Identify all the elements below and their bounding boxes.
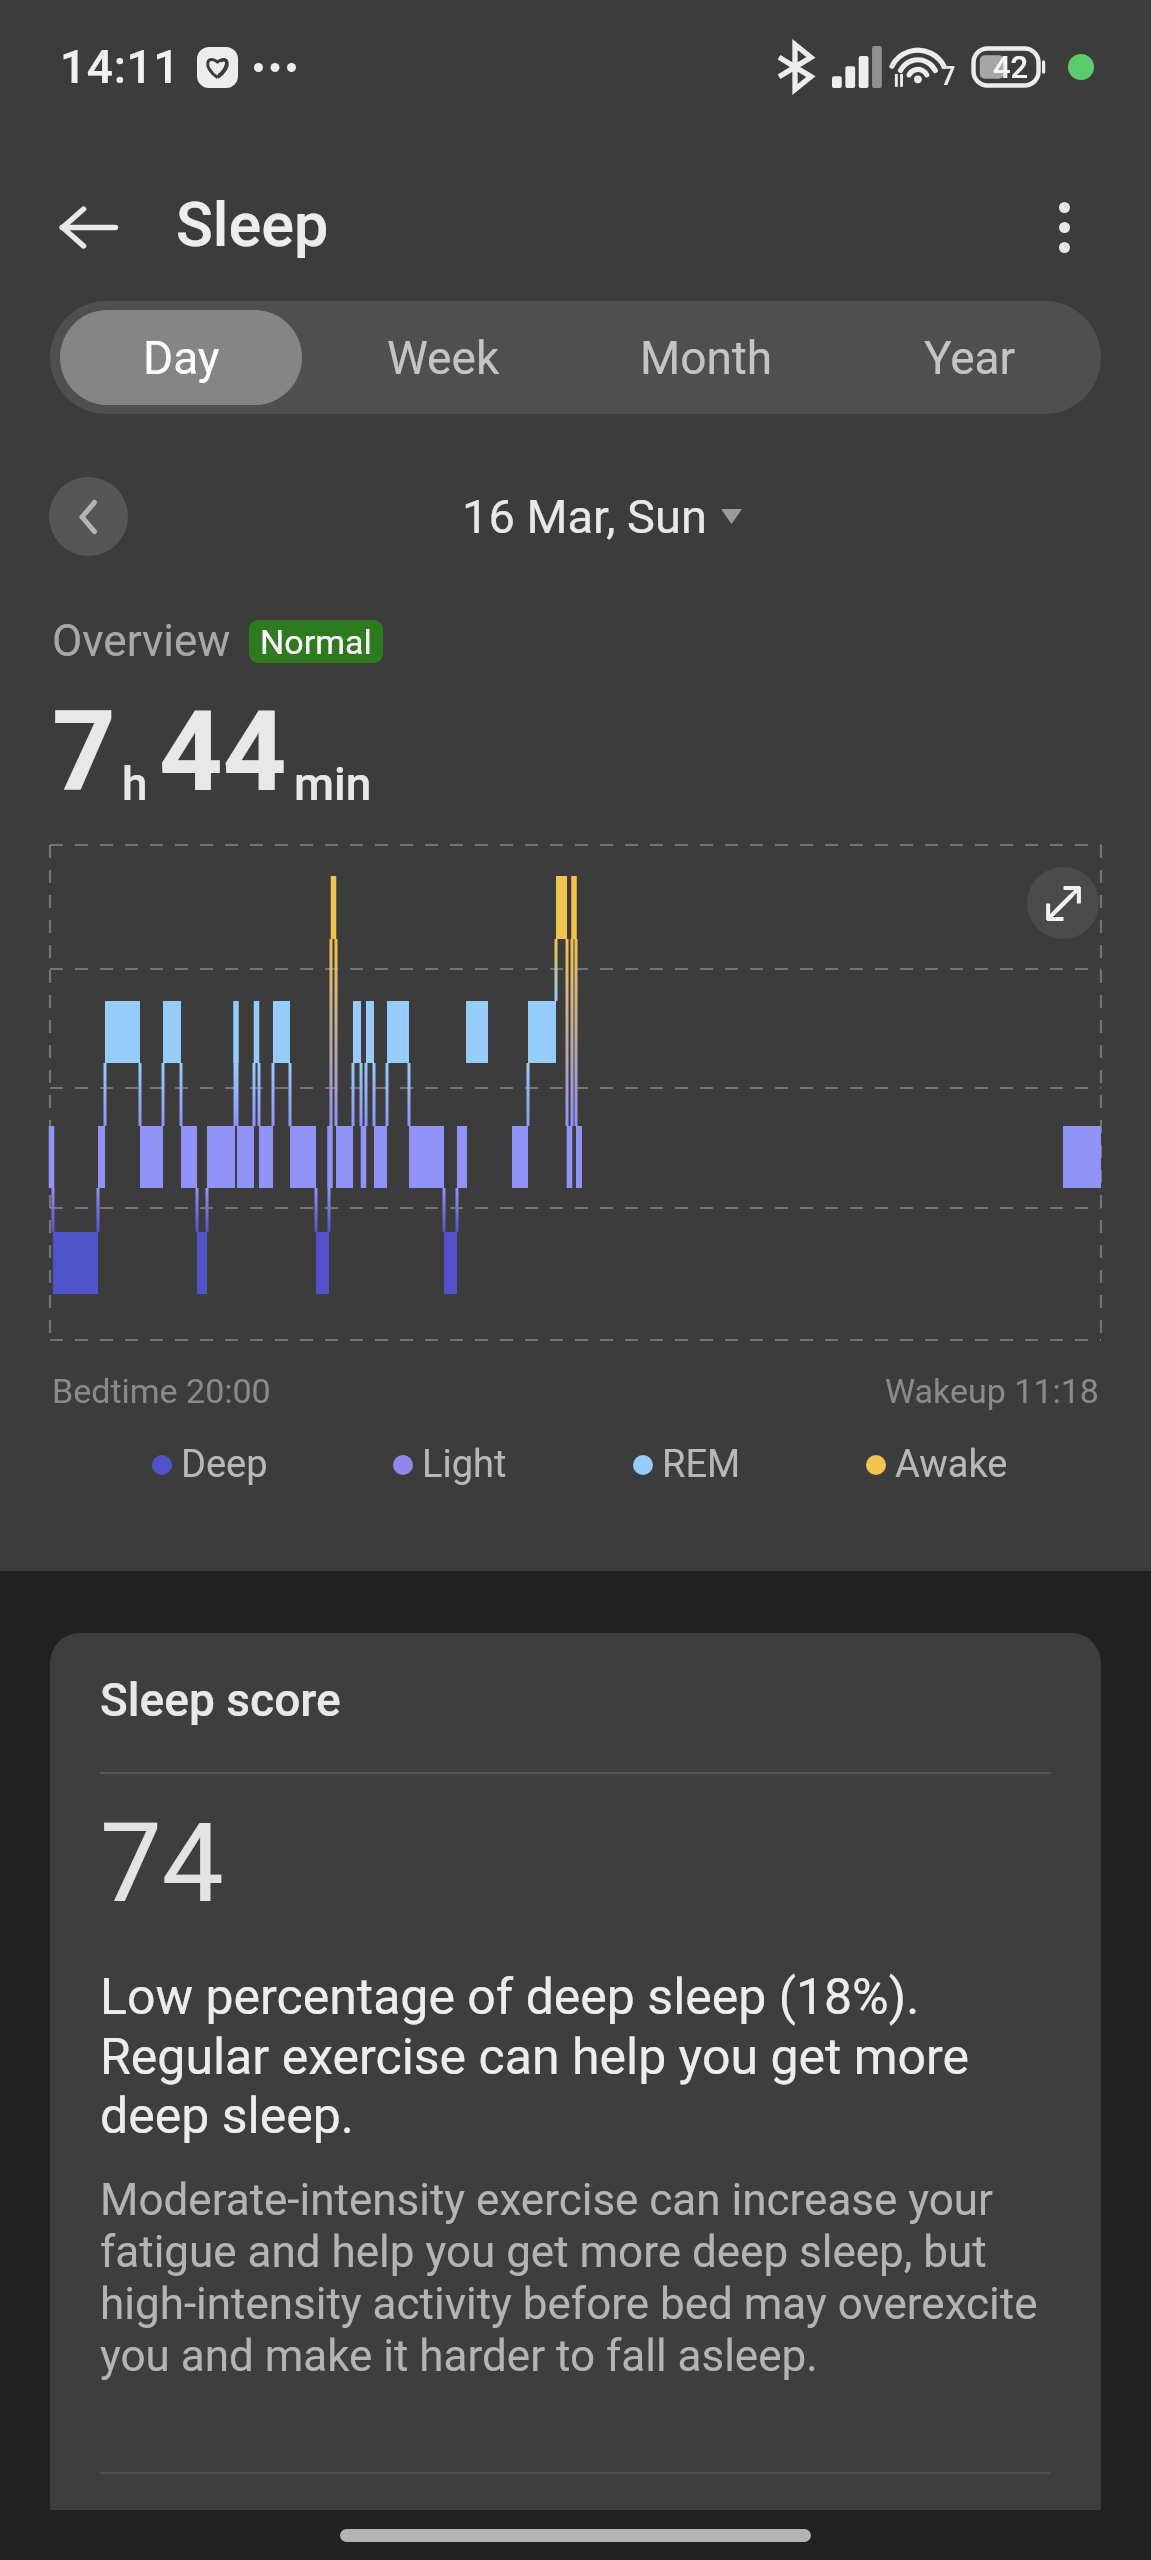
staticText: 44 <box>159 687 287 817</box>
staticText: Awake <box>895 1442 1008 1487</box>
staticText: 7 <box>941 62 956 91</box>
staticText: Overview <box>52 615 231 667</box>
button[interactable]: Expand chart <box>1027 867 1099 939</box>
staticText: Week <box>387 331 500 385</box>
staticText: 42 <box>993 49 1029 85</box>
staticText: min <box>294 757 372 811</box>
button[interactable]: Sleep score <box>50 1633 1101 2510</box>
staticText: Sleep <box>176 189 329 260</box>
staticText: Low percentage of deep sleep (18%). Regu… <box>100 1968 1051 2145</box>
button[interactable]: Month <box>585 310 828 405</box>
button[interactable]: Previous day <box>49 477 128 556</box>
staticText: Moderate-intensity exercise can increase… <box>100 2174 1051 2382</box>
staticText: REM <box>662 1442 741 1487</box>
staticText: Bedtime 20:00 <box>52 1371 271 1411</box>
staticText: Normal <box>260 622 372 662</box>
staticText: 74 <box>100 1799 224 1928</box>
staticText: Light <box>422 1442 507 1487</box>
staticText: Sleep score <box>100 1673 341 1727</box>
staticText: h <box>122 757 148 811</box>
staticText: 16 Mar, Sun <box>462 489 707 544</box>
staticText: 7 <box>52 687 116 817</box>
staticText: Wakeup 11:18 <box>885 1371 1099 1411</box>
button[interactable]: Year <box>848 310 1091 405</box>
staticText: 14:11 <box>60 40 181 94</box>
staticText: Year <box>924 331 1016 385</box>
staticText: Month <box>640 331 773 385</box>
button[interactable]: Week <box>322 310 565 405</box>
staticText: Deep <box>181 1442 268 1487</box>
button[interactable]: More options <box>1017 180 1112 275</box>
staticText: Day <box>143 331 220 385</box>
button[interactable]: Day <box>60 310 302 405</box>
button[interactable]: Back <box>41 180 136 275</box>
